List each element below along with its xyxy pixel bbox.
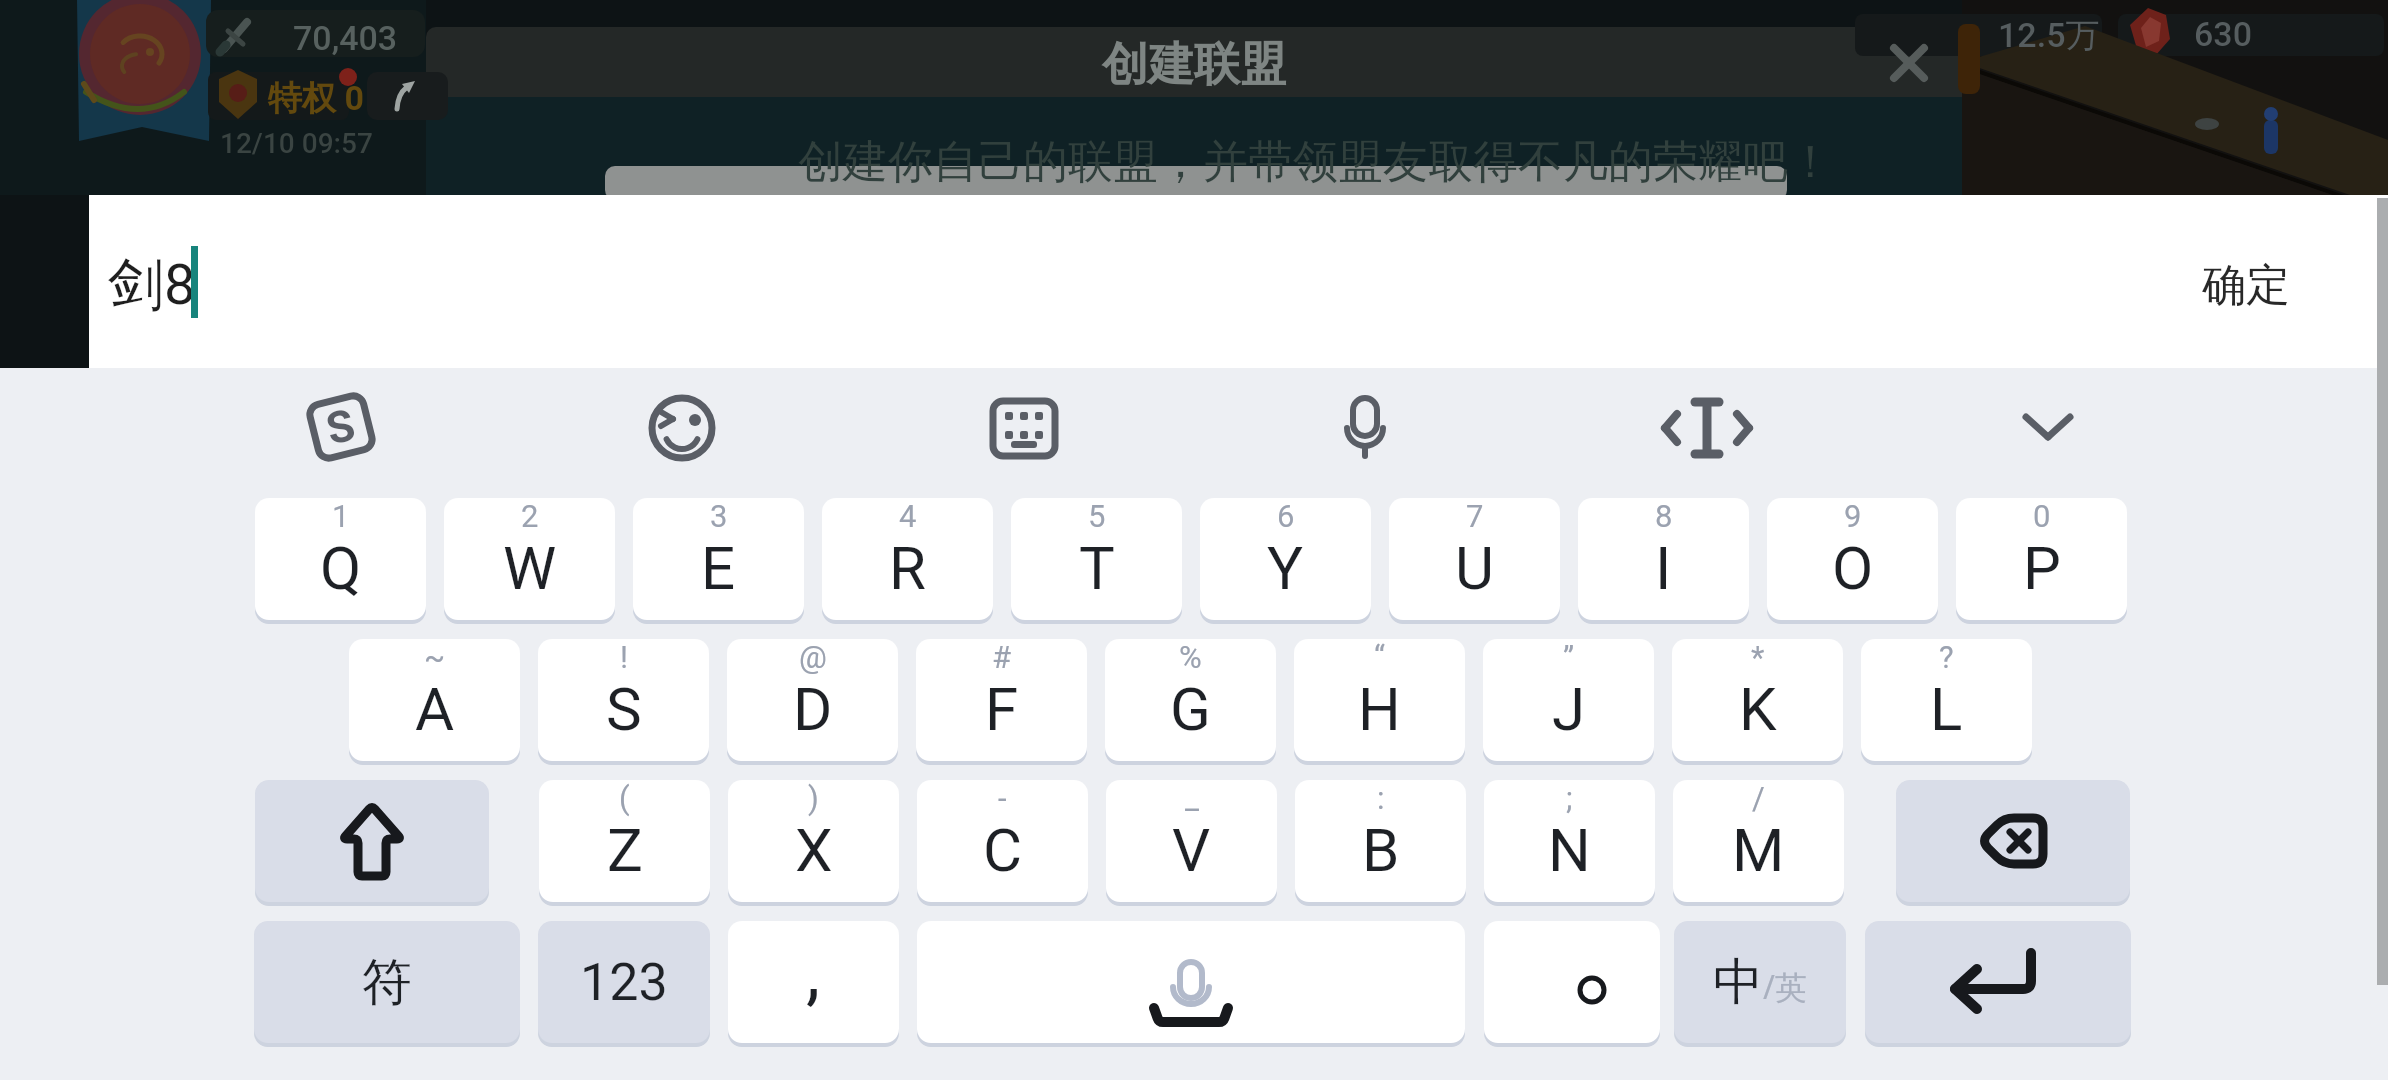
staticText: I — [1655, 533, 1672, 603]
staticText: E — [701, 533, 736, 603]
staticText: 剑8 — [108, 250, 196, 321]
staticText: D — [793, 674, 833, 744]
button[interactable]: ~ — [349, 639, 520, 761]
staticText: @ — [799, 639, 827, 675]
staticText: S — [606, 674, 642, 744]
button[interactable] — [917, 921, 1465, 1043]
button[interactable]: 3 — [633, 498, 804, 620]
button[interactable] — [637, 383, 727, 473]
staticText: 2 — [521, 498, 539, 534]
staticText: X — [795, 815, 833, 885]
staticText: G — [1170, 674, 1211, 744]
button[interactable]: ! — [538, 639, 709, 761]
staticText: A — [415, 674, 455, 744]
button[interactable]: ? — [1861, 639, 2032, 761]
staticText: 9 — [1844, 498, 1862, 534]
button[interactable] — [1865, 921, 2131, 1043]
button[interactable]: 确定 — [2166, 225, 2326, 345]
button[interactable]: 6 — [1200, 498, 1371, 620]
staticText: % — [1179, 639, 1202, 675]
staticText: 12.5万 — [1998, 14, 2100, 57]
staticText: ? — [1939, 639, 1954, 675]
staticText: 3 — [710, 498, 728, 534]
staticText: ~ — [424, 639, 446, 675]
button[interactable]: 8 — [1578, 498, 1749, 620]
button[interactable]: % — [1105, 639, 1276, 761]
staticText: # — [992, 639, 1012, 675]
staticText: 符 — [362, 951, 412, 1014]
staticText: 特权 0 — [268, 77, 364, 120]
button[interactable]: / — [1673, 780, 1844, 902]
staticText: 1 — [332, 498, 350, 534]
button[interactable]: ; — [1484, 780, 1655, 902]
button[interactable]: # — [916, 639, 1087, 761]
button[interactable] — [1662, 383, 1752, 473]
staticText: T — [1079, 533, 1115, 603]
staticText: H — [1358, 674, 1401, 744]
staticText: W — [503, 533, 557, 603]
staticText: 0 — [2033, 498, 2051, 534]
staticText: , — [806, 930, 821, 1014]
staticText: Y — [1267, 533, 1304, 603]
staticText: Z — [607, 815, 643, 885]
staticText: ; — [1566, 780, 1573, 816]
button[interactable]: S — [303, 389, 379, 465]
button[interactable] — [1484, 921, 1660, 1043]
button[interactable]: : — [1295, 780, 1466, 902]
staticText: * — [1751, 639, 1765, 675]
button[interactable]: ) — [728, 780, 899, 902]
staticText: O — [1832, 533, 1874, 603]
button[interactable]: 符 — [254, 921, 520, 1043]
staticText: ! — [620, 639, 628, 675]
button[interactable]: 1 — [255, 498, 426, 620]
button[interactable] — [1896, 780, 2130, 902]
button[interactable]: 4 — [822, 498, 993, 620]
staticText: M — [1732, 815, 1785, 885]
staticText: U — [1455, 533, 1494, 603]
staticText: N — [1548, 815, 1591, 885]
button[interactable]: 中 — [1674, 921, 1846, 1043]
staticText: 创建联盟 — [1102, 36, 1286, 94]
staticText: ” — [1563, 639, 1575, 675]
button[interactable]: 7 — [1389, 498, 1560, 620]
button[interactable] — [367, 72, 448, 120]
button[interactable]: 9 — [1767, 498, 1938, 620]
staticText: 630 — [2194, 14, 2252, 54]
staticText: Q — [320, 533, 362, 603]
staticText: R — [889, 533, 926, 603]
button[interactable]: @ — [727, 639, 898, 761]
button[interactable] — [1877, 32, 1941, 96]
button[interactable]: ” — [1483, 639, 1654, 761]
button[interactable]: 5 — [1011, 498, 1182, 620]
staticText: 7 — [1466, 498, 1484, 534]
staticText: 创建你自己的联盟，并带领盟友取得不凡的荣耀吧！ — [798, 134, 1833, 191]
button[interactable] — [1320, 383, 1410, 473]
staticText: “ — [1374, 639, 1385, 675]
staticText: / — [1752, 780, 1765, 816]
button[interactable]: , — [728, 921, 899, 1043]
button[interactable]: ( — [539, 780, 710, 902]
staticText: ( — [619, 780, 630, 816]
button[interactable]: 0 — [1956, 498, 2127, 620]
staticText: S — [321, 398, 361, 456]
staticText: /英 — [1763, 965, 1807, 1009]
button[interactable]: - — [917, 780, 1088, 902]
staticText: 6 — [1277, 498, 1295, 534]
staticText: P — [2023, 533, 2061, 603]
staticText: 8 — [1655, 498, 1673, 534]
button[interactable] — [255, 780, 489, 902]
staticText: C — [983, 815, 1023, 885]
staticText: 4 — [899, 498, 917, 534]
button[interactable]: “ — [1294, 639, 1465, 761]
staticText: - — [998, 780, 1007, 816]
staticText: F — [985, 674, 1019, 744]
staticText: L — [1930, 674, 1963, 744]
staticText: 中 — [1713, 951, 1763, 1014]
button[interactable]: 123 — [538, 921, 710, 1043]
button[interactable]: 2 — [444, 498, 615, 620]
button[interactable] — [2003, 383, 2093, 473]
button[interactable]: * — [1672, 639, 1843, 761]
button[interactable]: _ — [1106, 780, 1277, 902]
staticText: V — [1172, 815, 1211, 885]
button[interactable] — [979, 383, 1069, 473]
